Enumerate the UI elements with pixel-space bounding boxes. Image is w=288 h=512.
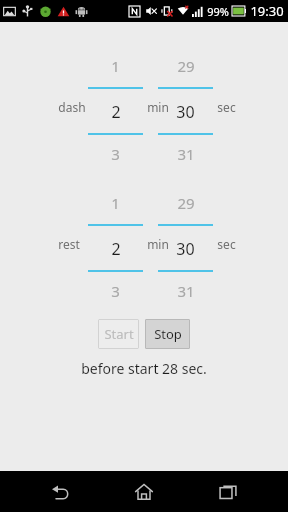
staticText: Stop bbox=[154, 325, 182, 343]
staticText: sec bbox=[217, 236, 236, 252]
staticText: 1 bbox=[111, 56, 120, 76]
staticText: sec bbox=[217, 99, 236, 115]
button[interactable]: Home bbox=[120, 471, 168, 512]
staticText: 1 bbox=[111, 193, 120, 213]
staticText: min bbox=[147, 236, 169, 252]
staticText: 2 bbox=[111, 238, 121, 258]
staticText: 2 bbox=[111, 101, 121, 121]
staticText: min bbox=[147, 99, 169, 115]
button[interactable]: 1 bbox=[88, 185, 143, 302]
staticText: Start bbox=[104, 325, 134, 343]
staticText: before start 28 sec. bbox=[81, 359, 207, 378]
button[interactable]: 1 bbox=[88, 48, 143, 165]
staticText: 3 bbox=[111, 144, 120, 164]
button[interactable]: Back bbox=[36, 471, 84, 512]
staticText: 29 bbox=[177, 56, 195, 76]
button[interactable]: Recent apps bbox=[204, 471, 252, 512]
staticText: 19:30 bbox=[250, 2, 284, 20]
staticText: 99% bbox=[207, 4, 229, 19]
staticText: 30 bbox=[176, 101, 195, 121]
staticText: rest bbox=[58, 236, 80, 252]
staticText: 3 bbox=[111, 281, 120, 301]
button[interactable]: Stop bbox=[145, 319, 190, 349]
button[interactable]: Start bbox=[98, 319, 139, 349]
staticText: 31 bbox=[177, 281, 195, 301]
staticText: 30 bbox=[176, 238, 195, 258]
staticText: 31 bbox=[177, 144, 195, 164]
button[interactable]: 29 bbox=[158, 48, 213, 165]
staticText: dash bbox=[58, 99, 86, 115]
button[interactable]: 29 bbox=[158, 185, 213, 302]
staticText: 29 bbox=[177, 193, 195, 213]
